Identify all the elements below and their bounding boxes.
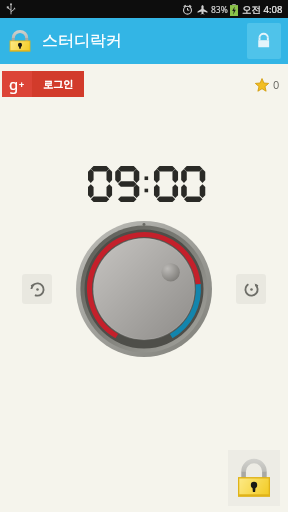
staticText: g	[9, 74, 19, 94]
staticText: 로그인	[43, 78, 73, 91]
button[interactable]: 0	[255, 77, 280, 92]
staticText: 83%	[211, 4, 228, 16]
button[interactable]: g	[2, 71, 84, 97]
button[interactable]: Rotate counter clockwise	[22, 274, 52, 304]
staticText: 스터디락커	[42, 31, 122, 51]
button[interactable]: Rotate clockwise	[236, 274, 266, 304]
staticText: 오전 4:08	[242, 3, 283, 16]
button[interactable]: Lock	[228, 450, 280, 506]
button[interactable]: Unlock	[247, 23, 281, 59]
staticText: 0	[273, 77, 280, 92]
staticText: +	[19, 78, 25, 90]
